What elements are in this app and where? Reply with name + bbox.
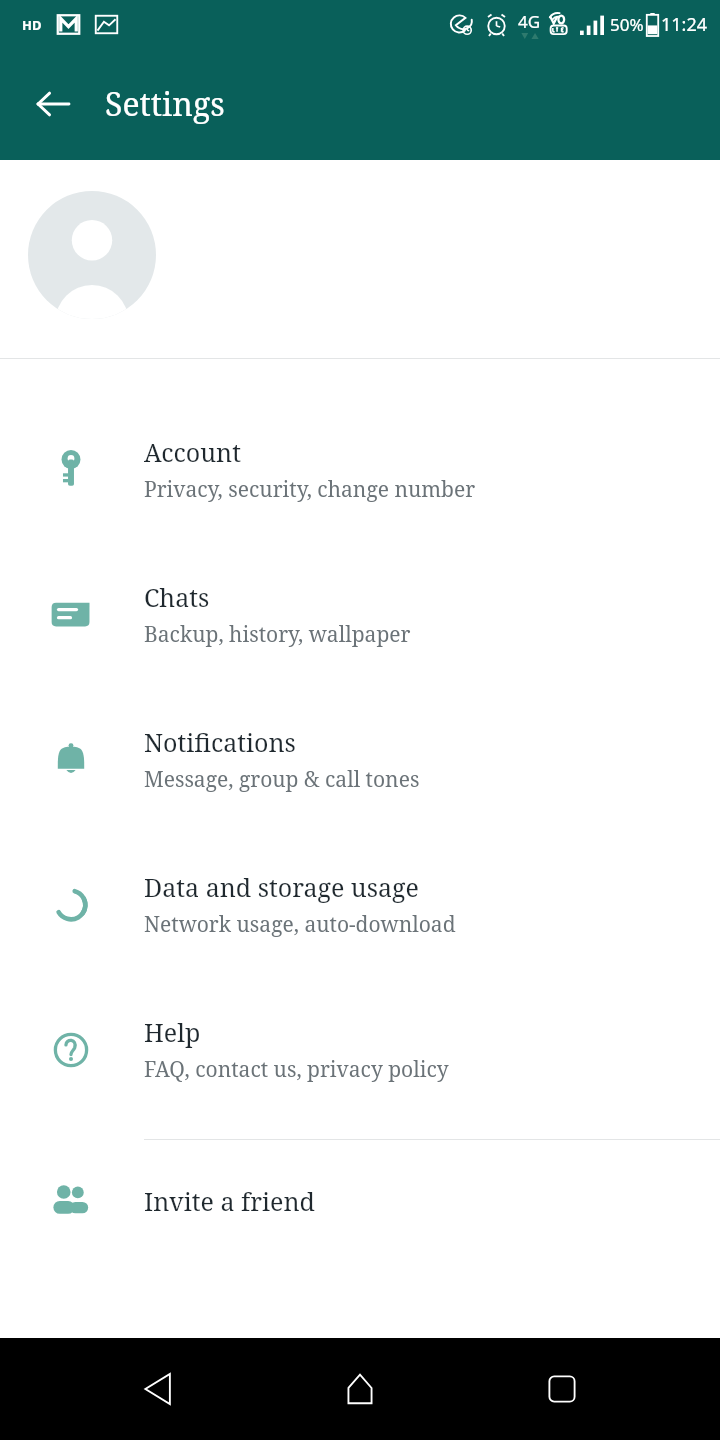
staticText: HD bbox=[22, 16, 42, 34]
staticText: Privacy, security, change number bbox=[144, 475, 476, 504]
button[interactable]: Notifications bbox=[0, 687, 720, 832]
staticText: 4G bbox=[518, 10, 541, 33]
staticText: Notifications bbox=[144, 725, 296, 759]
button[interactable]: Data and storage usage bbox=[0, 832, 720, 977]
button[interactable]: Chats bbox=[0, 542, 720, 687]
button[interactable]: Back bbox=[116, 1346, 202, 1432]
staticText: Help bbox=[144, 1015, 201, 1049]
staticText: Account bbox=[144, 435, 241, 469]
staticText: Settings bbox=[105, 82, 225, 126]
button[interactable]: Help bbox=[0, 977, 720, 1122]
button[interactable]: Recent apps bbox=[519, 1346, 605, 1432]
button[interactable]: Home bbox=[317, 1346, 403, 1432]
staticText: Network usage, auto-download bbox=[144, 910, 456, 939]
staticText: FAQ, contact us, privacy policy bbox=[144, 1055, 449, 1084]
staticText: 50% bbox=[610, 13, 644, 36]
staticText: Data and storage usage bbox=[144, 870, 419, 904]
staticText: Invite a friend bbox=[144, 1184, 315, 1218]
staticText: Chats bbox=[144, 580, 210, 614]
button[interactable]: Back bbox=[22, 73, 84, 135]
button[interactable] bbox=[0, 160, 720, 358]
staticText: Backup, history, wallpaper bbox=[144, 620, 411, 649]
staticText: Message, group & call tones bbox=[144, 765, 420, 794]
button[interactable]: Account bbox=[0, 397, 720, 542]
button[interactable]: Invite a friend bbox=[0, 1158, 720, 1244]
staticText: 11:24 bbox=[661, 12, 708, 37]
